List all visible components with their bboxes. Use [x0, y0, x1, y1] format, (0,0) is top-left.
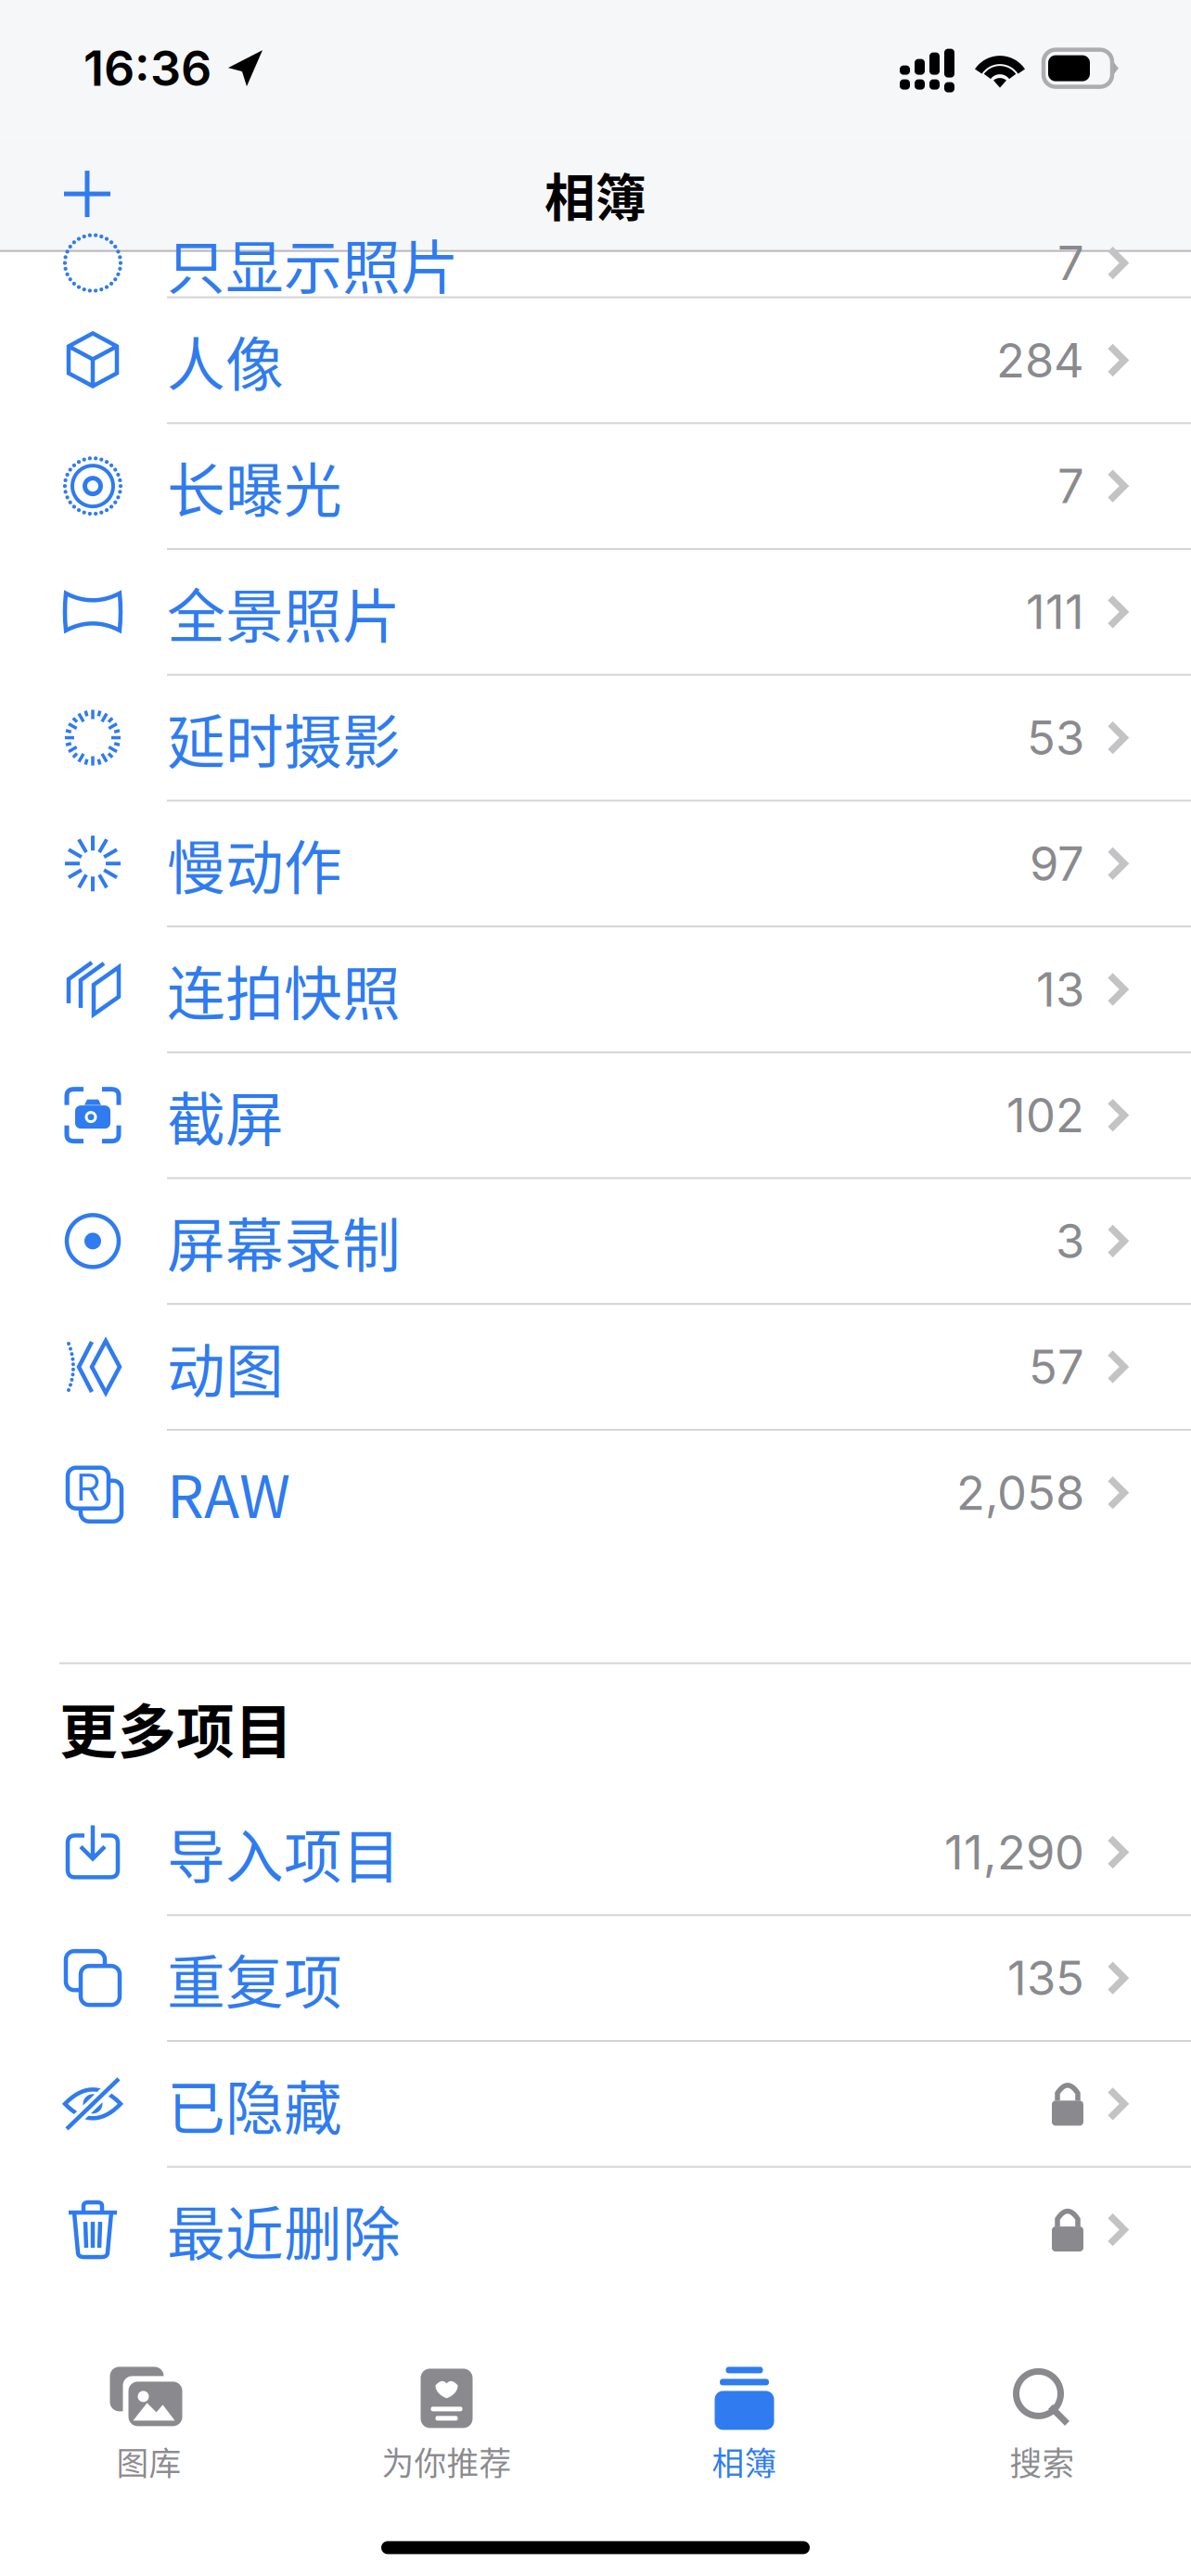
button[interactable]: 长曝光 [0, 424, 1191, 548]
staticText: 截屏 [167, 1073, 284, 1157]
staticText: 53 [1027, 709, 1084, 766]
button[interactable]: 图库 [0, 2364, 298, 2494]
staticText: 慢动作 [167, 821, 342, 906]
button[interactable]: 人像 [0, 298, 1191, 422]
staticText: 相簿 [544, 157, 647, 231]
button[interactable]: 已隐藏 [0, 2042, 1191, 2166]
button[interactable]: 最近删除 [0, 2168, 1191, 2292]
staticText: 动图 [167, 1325, 284, 1409]
staticText: 16:36 [83, 39, 211, 97]
staticText: 135 [1007, 1950, 1084, 2006]
staticText: 人像 [167, 318, 284, 402]
staticText: 57 [1029, 1338, 1084, 1395]
staticText: 已隐藏 [167, 2062, 342, 2146]
button[interactable]: 为你推荐 [298, 2364, 595, 2494]
staticText: 2,058 [956, 1464, 1084, 1521]
staticText: R [77, 1465, 100, 1510]
button[interactable]: 截屏 [0, 1053, 1191, 1177]
button[interactable]: New Album [32, 143, 142, 245]
button[interactable]: R [0, 1431, 1191, 1555]
staticText: 3 [1056, 1213, 1084, 1269]
button[interactable]: 连拍快照 [0, 927, 1191, 1051]
staticText: RAW [167, 1451, 290, 1535]
staticText: 111 [1026, 583, 1084, 640]
button[interactable]: 导入项目 [0, 1790, 1191, 1914]
staticText: 11,290 [944, 1824, 1084, 1881]
staticText: 连拍快照 [167, 947, 401, 1031]
staticText: 延时摄影 [167, 696, 401, 780]
staticText: 重复项 [167, 1936, 342, 2020]
staticText: 7 [1057, 235, 1084, 291]
staticText: 13 [1036, 961, 1084, 1018]
button[interactable]: 重复项 [0, 1916, 1191, 2040]
staticText: 为你推荐 [382, 2438, 512, 2485]
staticText: 图库 [116, 2438, 181, 2485]
staticText: 只显示照片 [167, 221, 459, 305]
button[interactable]: 动图 [0, 1305, 1191, 1429]
button[interactable]: 搜索 [893, 2364, 1191, 2494]
staticText: 相簿 [712, 2438, 777, 2485]
staticText: 284 [996, 332, 1084, 389]
staticText: 更多项目 [59, 1685, 293, 1769]
staticText: 屏幕录制 [167, 1199, 401, 1283]
staticText: 导入项目 [167, 1810, 401, 1894]
staticText: 长曝光 [167, 444, 342, 528]
button[interactable]: 全景照片 [0, 550, 1191, 674]
button[interactable]: 慢动作 [0, 802, 1191, 926]
button[interactable]: 相簿 [595, 2364, 893, 2494]
staticText: 最近删除 [167, 2188, 401, 2272]
staticText: 全景照片 [167, 570, 401, 654]
button[interactable]: 延时摄影 [0, 676, 1191, 800]
button[interactable]: 屏幕录制 [0, 1179, 1191, 1303]
staticText: 搜索 [1010, 2438, 1075, 2485]
staticText: 102 [1006, 1087, 1084, 1144]
staticText: 7 [1057, 458, 1084, 514]
staticText: 97 [1030, 835, 1084, 892]
